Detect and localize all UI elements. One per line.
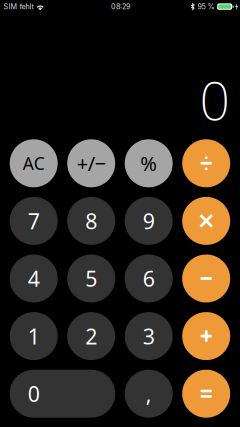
- button[interactable]: %: [125, 139, 173, 187]
- button[interactable]: 0: [10, 370, 115, 418]
- staticText: SIM fehlt: [4, 2, 34, 11]
- staticText: 9: [143, 207, 155, 235]
- staticText: 2: [85, 322, 97, 350]
- button[interactable]: Add: [182, 312, 230, 360]
- button[interactable]: 8: [67, 197, 115, 245]
- staticText: 08:29: [111, 2, 130, 11]
- staticText: +/−: [77, 150, 106, 177]
- staticText: ,: [146, 379, 152, 408]
- button[interactable]: 3: [125, 312, 173, 360]
- button[interactable]: ,: [125, 370, 173, 418]
- button[interactable]: 1: [10, 312, 58, 360]
- button[interactable]: Multiply: [182, 197, 230, 245]
- button[interactable]: Subtract: [182, 254, 230, 302]
- button[interactable]: 5: [67, 254, 115, 302]
- staticText: 3: [143, 322, 155, 350]
- staticText: 1: [28, 322, 40, 350]
- staticText: 0: [28, 379, 40, 408]
- staticText: %: [140, 150, 157, 177]
- button[interactable]: 4: [10, 254, 58, 302]
- button[interactable]: AC: [10, 139, 58, 187]
- staticText: 7: [28, 207, 40, 235]
- button[interactable]: +/−: [67, 139, 115, 187]
- button[interactable]: Equals: [182, 370, 230, 418]
- staticText: 5: [85, 264, 97, 293]
- button[interactable]: 7: [10, 197, 58, 245]
- staticText: 95 %: [197, 2, 214, 11]
- staticText: AC: [23, 152, 45, 175]
- staticText: 6: [143, 264, 155, 293]
- button[interactable]: 2: [67, 312, 115, 360]
- staticText: 0: [199, 64, 229, 135]
- staticText: 8: [85, 207, 97, 235]
- button[interactable]: 9: [125, 197, 173, 245]
- staticText: 4: [28, 264, 40, 293]
- button[interactable]: 6: [125, 254, 173, 302]
- button[interactable]: Divide: [182, 139, 230, 187]
